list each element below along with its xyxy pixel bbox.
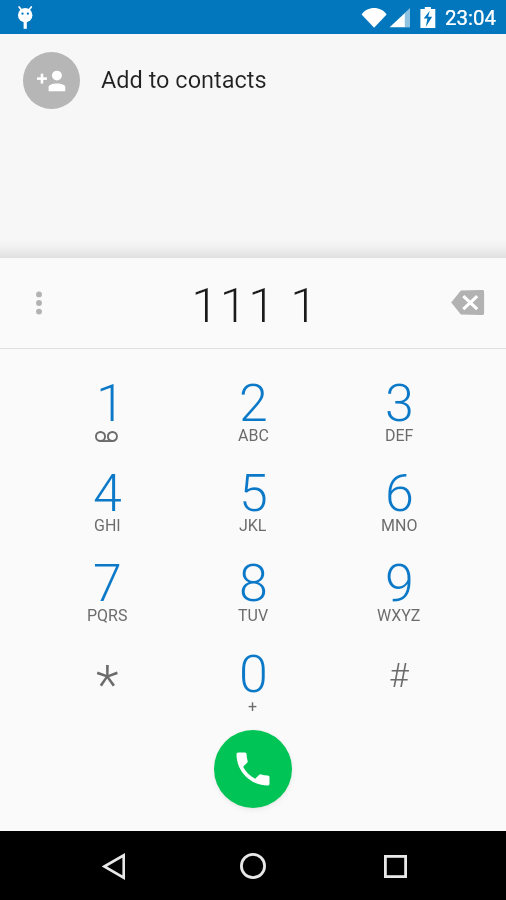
staticText: 3: [385, 373, 414, 434]
staticText: ABC: [238, 426, 269, 445]
button[interactable]: 4: [34, 448, 180, 538]
staticText: 2: [239, 373, 268, 434]
staticText: PQRS: [87, 606, 128, 625]
button[interactable]: More options: [9, 273, 69, 333]
staticText: 1: [96, 373, 125, 434]
button[interactable]: 1: [34, 358, 180, 448]
button[interactable]: Back: [82, 836, 142, 896]
staticText: JKL: [239, 516, 267, 535]
button[interactable]: Home: [223, 836, 283, 896]
staticText: 0: [239, 644, 268, 705]
button[interactable]: 3: [326, 358, 472, 448]
staticText: DEF: [385, 426, 414, 445]
staticText: 9: [385, 553, 414, 614]
staticText: 6: [385, 463, 414, 524]
button[interactable]: 0: [180, 629, 326, 719]
staticText: WXYZ: [377, 606, 421, 625]
staticText: GHI: [94, 516, 121, 535]
staticText: 111 1: [191, 277, 319, 334]
staticText: MNO: [381, 516, 418, 535]
button[interactable]: #: [326, 629, 472, 719]
button[interactable]: 2: [180, 358, 326, 448]
staticText: 7: [93, 553, 122, 614]
button[interactable]: *: [34, 629, 180, 719]
button[interactable]: Call: [214, 730, 292, 808]
button[interactable]: 5: [180, 448, 326, 538]
staticText: *: [96, 654, 119, 716]
staticText: 4: [93, 463, 122, 524]
button[interactable]: Recents: [365, 836, 425, 896]
button[interactable]: 6: [326, 448, 472, 538]
staticText: 23:04: [445, 6, 497, 30]
staticText: 5: [239, 463, 268, 524]
button[interactable]: Add to contacts: [0, 34, 506, 126]
staticText: #: [389, 655, 409, 695]
staticText: Add to contacts: [101, 66, 267, 94]
button[interactable]: 7: [34, 538, 180, 628]
button[interactable]: 9: [326, 538, 472, 628]
staticText: TUV: [238, 606, 269, 625]
staticText: 8: [239, 553, 268, 614]
button[interactable]: 8: [180, 538, 326, 628]
button[interactable]: Backspace: [442, 277, 494, 329]
staticText: +: [248, 697, 258, 716]
